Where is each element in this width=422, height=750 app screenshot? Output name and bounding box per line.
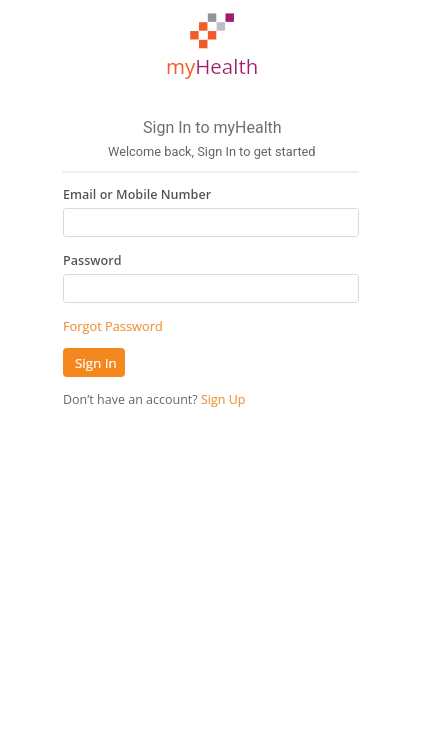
- staticText: Don’t have an account?: [63, 391, 201, 408]
- button[interactable]: Sign In: [63, 348, 125, 377]
- button[interactable]: Password input field: [63, 274, 359, 303]
- staticText: Sign Up: [201, 391, 246, 408]
- staticText: myHealth: [166, 52, 259, 80]
- staticText: Password: [63, 252, 122, 269]
- staticText: Forgot Password: [63, 317, 163, 334]
- staticText: Welcome back, Sign In to get started: [108, 144, 316, 159]
- staticText: Email or Mobile Number: [63, 186, 212, 203]
- staticText: Sign In to myHealth: [143, 118, 282, 137]
- button[interactable]: Sign Up: [201, 391, 246, 408]
- staticText: Sign In: [75, 354, 117, 372]
- button[interactable]: Forgot Password: [63, 317, 163, 334]
- button[interactable]: Email or Mobile Number input field: [63, 208, 359, 237]
